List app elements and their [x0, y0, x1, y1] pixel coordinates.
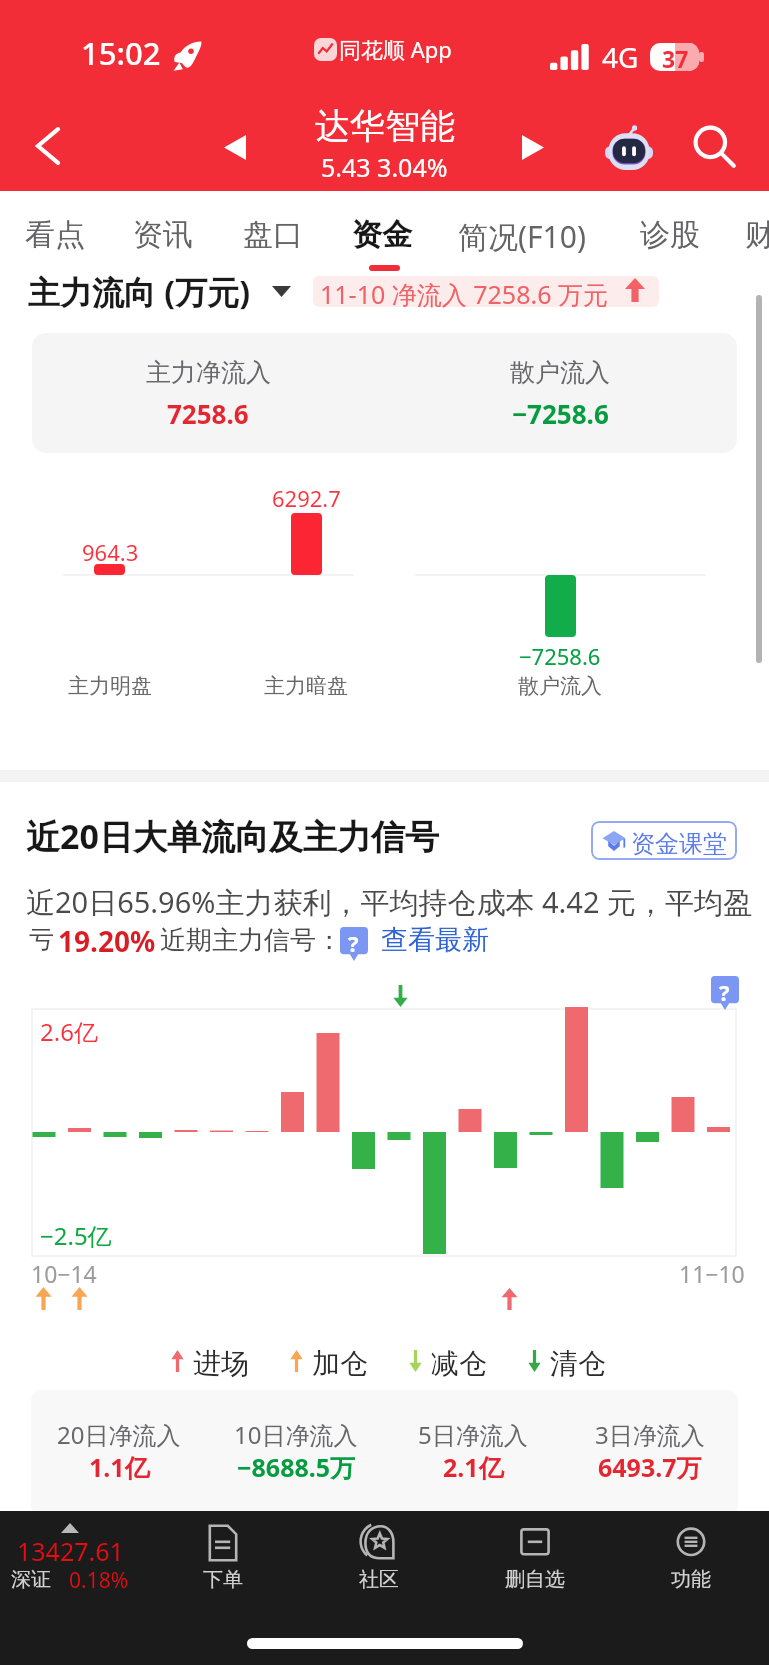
staticText: 诊股 — [640, 216, 700, 254]
staticText: 资金课堂 — [631, 829, 727, 859]
staticText: 11−10 — [679, 1258, 745, 1289]
button[interactable]: Search — [686, 118, 742, 174]
staticText: 7258.6 — [167, 396, 249, 431]
button[interactable] — [613, 1511, 769, 1621]
button[interactable] — [171, 1344, 261, 1378]
staticText: 0.18% — [69, 1566, 129, 1595]
button[interactable]: 看点 — [11, 196, 71, 270]
staticText: −2.5亿 — [40, 1219, 112, 1252]
button[interactable]: 诊股 — [626, 196, 686, 270]
staticText: 10−14 — [31, 1258, 97, 1289]
button[interactable] — [528, 1344, 618, 1378]
staticText: 资讯 — [133, 216, 193, 254]
staticText: 功能 — [671, 1567, 711, 1592]
staticText: 进场 — [193, 1346, 249, 1381]
staticText: 964.3 — [82, 537, 139, 567]
staticText: 4G — [602, 38, 639, 76]
staticText: 2.6亿 — [40, 1015, 98, 1048]
button[interactable]: AI assistant — [601, 120, 657, 176]
staticText: 6292.7 — [272, 483, 341, 513]
button[interactable]: Help — [711, 976, 739, 1010]
button[interactable]: Back — [22, 118, 78, 174]
button[interactable] — [313, 276, 659, 307]
staticText: 减仓 — [431, 1346, 487, 1381]
staticText: 主力流向 (万元) — [28, 270, 251, 314]
staticText: −8688.5万 — [237, 1450, 356, 1484]
staticText: 6493.7万 — [598, 1450, 702, 1484]
staticText: 下单 — [203, 1567, 243, 1592]
staticText: 资金 — [352, 216, 412, 254]
button[interactable]: Help — [340, 927, 368, 961]
staticText: 查看最新 — [381, 923, 489, 957]
staticText: 1.1亿 — [89, 1450, 150, 1484]
staticText: 同花顺 App — [339, 34, 452, 64]
staticText: 散户流入 — [518, 673, 602, 699]
staticText: ? — [348, 928, 359, 958]
staticText: 3日净流入 — [595, 1418, 705, 1451]
button[interactable]: Previous stock — [210, 122, 260, 172]
button[interactable]: 简况(F10) — [444, 196, 572, 270]
staticText: 简况(F10) — [458, 216, 586, 257]
staticText: 深证 — [11, 1567, 51, 1592]
button[interactable]: 财 — [731, 196, 761, 270]
button[interactable]: 资讯 — [119, 196, 179, 270]
staticText: 37 — [662, 43, 689, 71]
staticText: 盘口 — [243, 216, 303, 254]
staticText: 5日净流入 — [418, 1418, 528, 1451]
button[interactable] — [591, 821, 737, 860]
staticText: 11-10 净流入 7258.6 万元 — [320, 277, 608, 311]
staticText: 主力净流入 — [146, 357, 271, 388]
button[interactable]: 资金 — [338, 196, 398, 270]
button[interactable] — [457, 1511, 613, 1621]
staticText: 15:02 — [81, 32, 161, 74]
staticText: 近20日65.96%主力获利，平均持仓成本 4.42 元，平均盈 — [26, 882, 753, 922]
staticText: 5.43 3.04% — [321, 150, 448, 184]
staticText: 19.20% — [58, 922, 156, 960]
staticText: 社区 — [359, 1567, 399, 1592]
staticText: −7258.6 — [512, 396, 609, 431]
button[interactable]: 盘口 — [229, 196, 289, 270]
staticText: −7258.6 — [519, 641, 601, 671]
staticText: 清仓 — [550, 1346, 606, 1381]
staticText: 20日净流入 — [57, 1418, 181, 1451]
staticText: 达华智能 — [315, 104, 455, 148]
staticText: 近期主力信号： — [160, 924, 342, 957]
staticText: 亏 — [29, 924, 54, 955]
staticText: 财 — [745, 216, 769, 254]
staticText: 主力暗盘 — [264, 673, 348, 699]
button[interactable] — [0, 1511, 145, 1621]
button[interactable] — [409, 1344, 499, 1378]
staticText: 删自选 — [505, 1567, 565, 1592]
button[interactable]: Next stock — [508, 122, 558, 172]
staticText: 2.1亿 — [443, 1450, 504, 1484]
button[interactable] — [290, 1344, 380, 1378]
staticText: 13427.61 — [17, 1534, 124, 1568]
staticText: ? — [719, 977, 730, 1007]
staticText: 散户流入 — [510, 357, 610, 388]
staticText: 近20日大单流向及主力信号 — [26, 813, 439, 859]
button[interactable]: 查看最新 — [381, 923, 489, 957]
button[interactable] — [301, 1511, 457, 1621]
staticText: 加仓 — [312, 1346, 368, 1381]
staticText: 看点 — [25, 216, 85, 254]
button[interactable] — [145, 1511, 301, 1621]
staticText: 主力明盘 — [68, 673, 152, 699]
staticText: 10日净流入 — [234, 1418, 358, 1451]
